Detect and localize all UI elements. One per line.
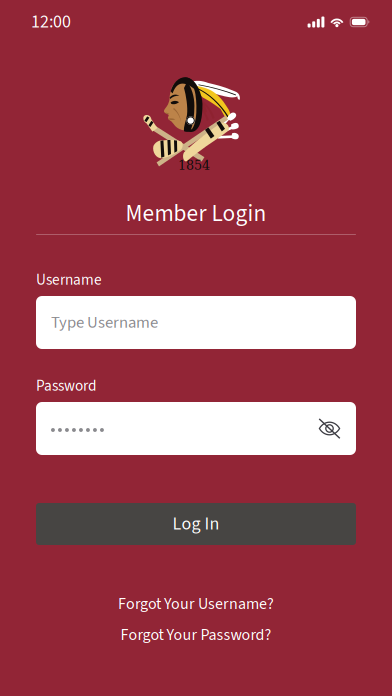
staticText: Log In [172, 511, 219, 537]
button[interactable]: Forgot Your Username? [0, 592, 392, 616]
staticText: 1854 [178, 158, 210, 173]
staticText: 12:00 [31, 9, 71, 35]
button[interactable]: Forgot Your Password? [0, 623, 392, 647]
button[interactable]: Show password [318, 417, 341, 439]
staticText: Username [36, 269, 102, 291]
staticText: Member Login [125, 197, 266, 230]
staticText: Forgot Your Password? [120, 624, 271, 646]
staticText: Forgot Your Username? [118, 593, 274, 615]
button[interactable]: Log In [36, 503, 356, 545]
staticText: Password [36, 375, 97, 397]
staticText: Type Username [51, 311, 158, 334]
